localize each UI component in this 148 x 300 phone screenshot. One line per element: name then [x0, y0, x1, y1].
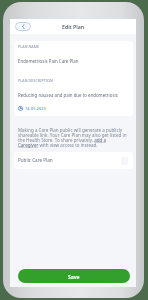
button[interactable]: Public Care Plan [14, 152, 133, 169]
staticText: Reducing nausea and pain due to endometr… [18, 92, 118, 98]
staticText: Endometriosis Pain Care Plan [18, 58, 79, 64]
button[interactable]: Save [18, 269, 130, 283]
staticText: PLAN DESCRIPTION [18, 78, 53, 83]
staticText: Save [68, 273, 80, 280]
staticText: Making a Care Plan public will generate … [18, 127, 127, 148]
staticText: Public Care Plan [18, 157, 53, 163]
staticText: PLAN NAME [18, 44, 40, 49]
button[interactable]: Back [15, 22, 31, 31]
staticText: Edit Plan [62, 23, 85, 30]
staticText: 14-05-2023 [25, 106, 46, 111]
